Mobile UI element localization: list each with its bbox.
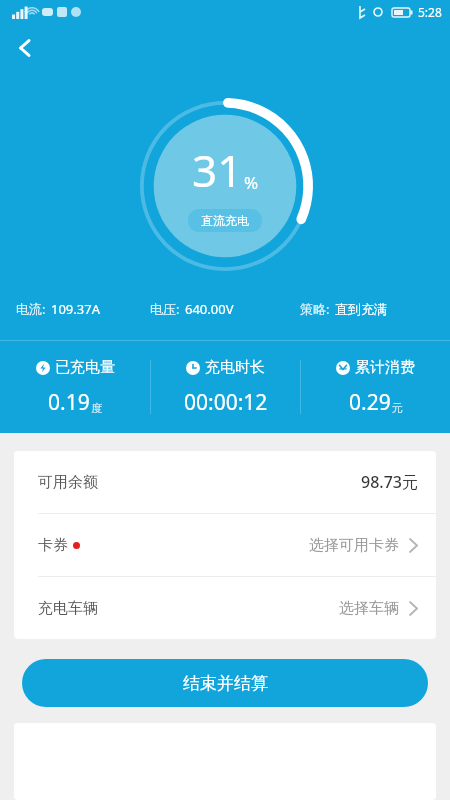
staticText: 0.29 [349,388,391,417]
staticText: 98.73元 [361,471,418,493]
staticText: 00:00:12 [184,388,268,417]
button[interactable]: Back [2,25,48,71]
staticText: 选择车辆 [339,599,399,618]
staticText: 0.19 [48,388,90,417]
button[interactable]: 卡券 [14,514,436,576]
staticText: 累计消费 [355,358,415,377]
staticText: 充电时长 [205,358,265,377]
staticText: 5:28 [418,4,442,20]
button[interactable]: 结束并结算 [22,659,428,707]
staticText: 元 [392,401,403,415]
staticText: 31 [192,140,243,200]
staticText: 度 [91,401,102,415]
staticText: 640.00V [185,300,234,318]
staticText: 直流充电 [201,213,249,228]
button[interactable]: 充电时长 [151,358,300,417]
staticText: % [244,171,259,194]
staticText: 直到充满 [335,301,387,317]
staticText: 电压: [150,300,180,318]
staticText: 充电车辆 [38,599,98,618]
staticText: 策略: [300,300,330,318]
staticText: 可用余额 [38,473,98,492]
staticText: 选择可用卡券 [309,536,399,555]
button[interactable]: 可用余额 [14,451,436,513]
staticText: 结束并结算 [183,673,268,694]
button[interactable]: 累计消费 [301,358,450,417]
staticText: 电流: [16,300,46,318]
staticText: 已充电量 [55,358,115,377]
staticText: 卡券 [38,536,68,555]
button[interactable]: 已充电量 [0,358,150,417]
staticText: 109.37A [51,300,100,318]
button[interactable]: 充电车辆 [14,577,436,639]
